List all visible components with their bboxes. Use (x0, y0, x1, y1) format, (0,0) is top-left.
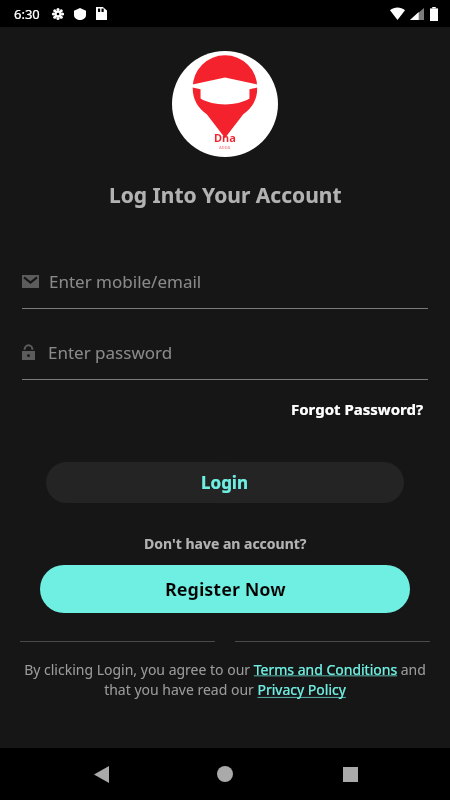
button[interactable]: Login (46, 462, 404, 503)
button[interactable]: Enter mobile/email (22, 264, 428, 298)
button[interactable]: Back (77, 750, 125, 798)
staticText: By clicking Login, you agree to our Term… (18, 660, 432, 700)
staticText: Enter password (48, 341, 173, 364)
button[interactable]: Recent apps (326, 750, 374, 798)
staticText: 6:30 (14, 5, 40, 23)
staticText: Login (201, 471, 249, 494)
button[interactable]: Home (201, 750, 249, 798)
staticText: Log Into Your Account (109, 181, 342, 210)
button[interactable]: Forgot Password? (287, 397, 428, 421)
button[interactable]: Register Now (40, 565, 410, 613)
staticText: Register Now (165, 577, 286, 602)
button[interactable]: Enter password (22, 335, 428, 369)
staticText: ADDA (219, 145, 231, 150)
staticText: Forgot Password? (291, 399, 424, 419)
button[interactable]: By clicking Login, you agree to our Term… (18, 660, 432, 700)
staticText: Enter mobile/email (49, 270, 202, 293)
staticText: Dna (214, 130, 236, 145)
staticText: Don't have an account? (144, 534, 307, 553)
